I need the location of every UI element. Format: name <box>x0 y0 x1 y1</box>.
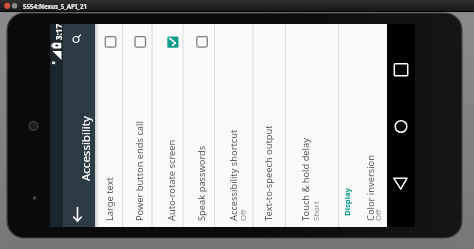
button[interactable] <box>252 24 286 227</box>
staticText: Short <box>311 201 322 221</box>
staticText: Speak passwords <box>195 145 208 221</box>
staticText: Auto-rotate screen <box>165 139 178 221</box>
button[interactable] <box>390 172 412 196</box>
staticText: Color inversion <box>364 155 377 221</box>
staticText: Accessibility shortcut <box>227 129 240 221</box>
staticText: Power button ends call <box>133 121 146 221</box>
button[interactable] <box>122 24 152 227</box>
staticText: Text-to-speech output <box>262 125 275 221</box>
button[interactable] <box>63 24 95 227</box>
button[interactable] <box>353 24 387 227</box>
button[interactable] <box>152 24 182 227</box>
button[interactable] <box>95 24 122 227</box>
staticText: Display <box>342 188 352 216</box>
button[interactable]: 5554:Nexus_5_API_21 <box>23 0 87 11</box>
staticText: Off <box>373 209 384 221</box>
staticText: 3:17 <box>53 24 64 40</box>
staticText: Accessibility <box>78 116 94 181</box>
button[interactable] <box>213 24 253 227</box>
button[interactable] <box>182 24 213 227</box>
staticText: 5554:Nexus_5_API_21 <box>23 2 87 10</box>
button[interactable] <box>286 24 326 227</box>
button[interactable] <box>390 115 412 139</box>
button[interactable] <box>390 58 412 82</box>
staticText: Touch & hold delay <box>299 138 312 221</box>
staticText: Off <box>238 209 249 221</box>
staticText: Large text <box>103 177 116 221</box>
